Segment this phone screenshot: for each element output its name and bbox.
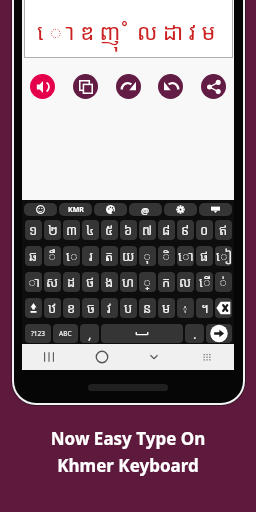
- button[interactable]: ៩: [177, 220, 194, 240]
- staticText: ុំ: [183, 304, 188, 313]
- button[interactable]: ៨: [158, 220, 175, 240]
- button[interactable]: ?123: [25, 324, 51, 343]
- staticText: ៀ: [216, 247, 232, 265]
- staticText: ឋ: [48, 299, 57, 317]
- staticText: ន: [143, 299, 152, 317]
- button[interactable]: ង: [101, 272, 118, 292]
- staticText: ,: [88, 325, 92, 343]
- button[interactable]: ឥ: [215, 220, 232, 240]
- staticText: ោ: [178, 247, 194, 265]
- staticText: .: [193, 325, 197, 343]
- staticText: ់: [219, 273, 228, 291]
- button[interactable]: ៧: [139, 220, 156, 240]
- staticText: ០: [200, 221, 209, 239]
- button[interactable]: ា: [25, 272, 42, 292]
- button[interactable]: ៦: [120, 220, 137, 240]
- staticText: ថ: [86, 273, 95, 291]
- staticText: ោឌញុំលដាវម: [37, 16, 221, 46]
- button[interactable]: Share: [201, 74, 226, 99]
- button[interactable]: @: [129, 203, 162, 216]
- button[interactable]: Theme: [94, 203, 127, 216]
- button[interactable]: ៥: [101, 220, 118, 240]
- button[interactable]: ត: [101, 246, 118, 266]
- staticText: ៣: [66, 221, 78, 239]
- button[interactable]: េ: [63, 246, 80, 266]
- button[interactable]: ហ: [120, 272, 137, 292]
- button[interactable]: Undo: [158, 74, 183, 99]
- staticText: @: [141, 204, 150, 216]
- button[interactable]: ABC: [53, 324, 78, 343]
- button[interactable]: ។: [196, 298, 213, 318]
- button[interactable]: Speak: [30, 74, 55, 99]
- button[interactable]: ុំ: [177, 298, 194, 318]
- staticText: ហ: [122, 273, 135, 291]
- button[interactable]: ម: [158, 298, 175, 318]
- button[interactable]: Enter: [206, 324, 232, 343]
- button[interactable]: ប: [120, 298, 137, 318]
- button[interactable]: Switch keyboard: [196, 346, 218, 368]
- staticText: Khmer Keyboard: [0, 454, 256, 477]
- button[interactable]: ឹ: [44, 246, 61, 266]
- staticText: ម: [162, 299, 171, 317]
- staticText: ប: [124, 299, 133, 317]
- button[interactable]: ផ: [196, 246, 213, 266]
- staticText: ខ: [67, 299, 76, 317]
- button[interactable]: Redo: [116, 74, 141, 99]
- staticText: Now Easy Type On: [0, 427, 256, 450]
- button[interactable]: ល: [177, 272, 194, 292]
- button[interactable]: ើ: [196, 272, 213, 292]
- button[interactable]: ដ: [63, 272, 80, 292]
- button[interactable]: ិ: [158, 246, 175, 266]
- button[interactable]: ច: [82, 298, 99, 318]
- staticText: KMR: [68, 205, 84, 215]
- staticText: ល: [179, 273, 192, 291]
- button[interactable]: Shift: [25, 298, 42, 318]
- button[interactable]: ,: [80, 324, 99, 343]
- button[interactable]: ឋ: [44, 298, 61, 318]
- staticText: ុ: [143, 247, 152, 265]
- staticText: ផ: [200, 247, 209, 265]
- button[interactable]: Backspace: [215, 298, 232, 318]
- button[interactable]: ៀ: [215, 246, 232, 266]
- button[interactable]: ១: [25, 220, 42, 240]
- button[interactable]: ក: [158, 272, 175, 292]
- button[interactable]: ៣: [63, 220, 80, 240]
- button[interactable]: ២: [44, 220, 61, 240]
- button[interactable]: Keyboard: [199, 203, 232, 216]
- button[interactable]: Copy: [73, 74, 98, 99]
- staticText: េ: [66, 247, 78, 265]
- button[interactable]: ្: [139, 272, 156, 292]
- button[interactable]: ឆ: [25, 246, 42, 266]
- button[interactable]: ស: [44, 272, 61, 292]
- button[interactable]: Space: [101, 324, 183, 343]
- button[interactable]: ់: [215, 272, 232, 292]
- button[interactable]: ០: [196, 220, 213, 240]
- button[interactable]: Emoji: [24, 203, 57, 216]
- button[interactable]: ខ: [63, 298, 80, 318]
- staticText: វ: [107, 299, 112, 317]
- button[interactable]: ថ: [82, 272, 99, 292]
- button[interactable]: ៤: [82, 220, 99, 240]
- staticText: ១: [29, 221, 38, 239]
- button[interactable]: Home: [91, 346, 113, 368]
- button[interactable]: យ: [120, 246, 137, 266]
- button[interactable]: Back: [143, 346, 165, 368]
- staticText: ឹ: [48, 247, 57, 265]
- staticText: ា: [28, 273, 40, 291]
- button[interactable]: KMR: [59, 203, 92, 216]
- staticText: ?123: [31, 329, 45, 338]
- staticText: ច: [87, 299, 95, 317]
- staticText: ស: [46, 273, 59, 291]
- button[interactable]: Recents: [38, 346, 60, 368]
- button[interactable]: រ: [82, 246, 99, 266]
- button[interactable]: ុ: [139, 246, 156, 266]
- button[interactable]: ន: [139, 298, 156, 318]
- staticText: ៧: [142, 221, 153, 239]
- staticText: ឆ: [29, 247, 38, 265]
- staticText: ៥: [105, 221, 114, 239]
- button[interactable]: Settings: [164, 203, 197, 216]
- staticText: រ: [89, 247, 93, 265]
- button[interactable]: វ: [101, 298, 118, 318]
- button[interactable]: ោ: [177, 246, 194, 266]
- button[interactable]: .: [185, 324, 204, 343]
